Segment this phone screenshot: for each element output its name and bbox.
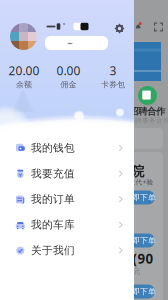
button[interactable]: 我的钱包 — [0, 135, 134, 161]
button[interactable] — [45, 36, 108, 50]
button[interactable]: 我要充值 — [0, 161, 134, 186]
staticText: 关于我们 — [31, 244, 75, 257]
button[interactable]: Notifications — [134, 22, 143, 31]
button[interactable]: 0.00 — [46, 64, 90, 88]
staticText: 招聘合作 — [129, 106, 165, 117]
staticText: 我的订单 — [31, 193, 75, 206]
staticText: 佣金 — [60, 80, 76, 89]
staticText: 我的钱包 — [31, 141, 75, 154]
staticText: 立即下单 — [124, 193, 156, 202]
staticText: 我要充值 — [31, 167, 75, 180]
staticText: 我的车库 — [31, 218, 75, 231]
staticText: 院 — [131, 163, 144, 180]
button[interactable]: 我的订单 — [0, 186, 134, 212]
button[interactable]: 我的车库 — [0, 212, 134, 238]
button[interactable]: 20.00 — [2, 64, 46, 88]
staticText: 余额 — [16, 80, 32, 89]
staticText: 3 — [109, 63, 116, 78]
button[interactable]: 3 — [91, 64, 135, 88]
staticText: 立即下单 — [124, 236, 156, 245]
staticText: 取代+验 — [128, 178, 153, 186]
staticText: 元 — [133, 267, 140, 276]
button[interactable]: Settings — [114, 23, 124, 33]
button[interactable]: 关于我们 — [0, 238, 134, 263]
staticText: 招聘事务合作 — [128, 116, 168, 125]
button[interactable]: Scan — [154, 22, 163, 31]
staticText: 立即下单 — [124, 287, 156, 296]
staticText: 0.00 — [56, 63, 80, 78]
staticText: 卡券包 — [101, 80, 125, 89]
staticText: (90 — [132, 250, 153, 267]
staticText: 20.00 — [8, 63, 39, 78]
